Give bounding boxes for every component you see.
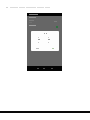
button[interactable] bbox=[31, 31, 59, 51]
